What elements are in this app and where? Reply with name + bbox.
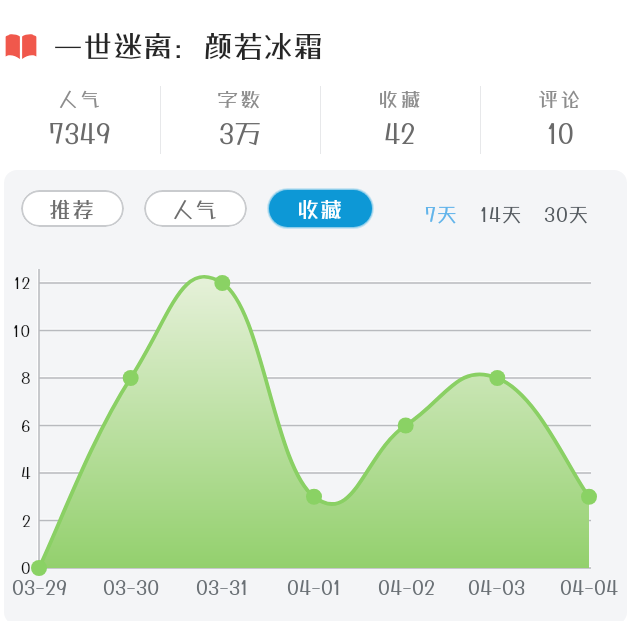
staticText: 6 [21,416,32,435]
staticText: 10 [547,117,574,149]
button[interactable]: 推荐 [21,190,124,227]
staticText: 4 [21,463,32,482]
button[interactable]: 人气 [0,70,160,165]
staticText: 人气 [58,87,103,111]
staticText: 字数 [218,87,263,111]
staticText: 一世迷离：颜若冰霜 [53,29,323,64]
button[interactable]: 收藏 [320,70,480,165]
staticText: 8 [21,368,32,387]
button[interactable]: 人气 [144,190,247,227]
staticText: 3万 [219,117,262,149]
staticText: 10 [13,321,32,340]
button[interactable]: 字数 [160,70,320,165]
staticText: 12 [14,273,32,292]
staticText: 14天 [480,202,523,226]
other: Book [5,34,37,59]
staticText: 04-03 [468,575,526,599]
staticText: 推荐 [49,196,96,222]
staticText: 04-02 [378,575,435,599]
staticText: 收藏 [378,87,423,111]
staticText: 评论 [538,87,583,111]
staticText: 04-04 [560,575,619,599]
staticText: 7天 [425,202,458,226]
staticText: 03-30 [103,575,160,599]
staticText: 03-29 [12,575,67,599]
staticText: 0 [21,558,32,577]
staticText: 03-31 [196,575,249,599]
staticText: 30天 [544,202,590,226]
button[interactable]: 评论 [480,70,640,165]
button[interactable]: 14天 [478,198,525,230]
button[interactable]: 收藏 [269,190,372,227]
staticText: 2 [22,511,32,530]
staticText: 人气 [172,196,219,222]
staticText: 7349 [49,117,111,149]
button[interactable]: 7天 [423,198,460,230]
staticText: 收藏 [297,196,344,222]
button[interactable]: 30天 [542,198,592,230]
staticText: 42 [384,117,416,149]
staticText: 04-01 [287,575,341,599]
